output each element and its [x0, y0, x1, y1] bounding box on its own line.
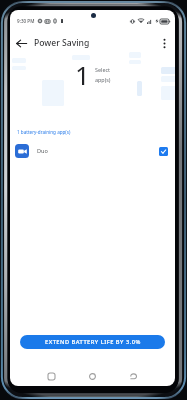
button[interactable]: Recent apps: [44, 369, 58, 383]
staticText: Duo: [37, 147, 48, 155]
staticText: Select: [95, 66, 110, 73]
button[interactable]: More options: [153, 32, 175, 54]
staticText: Power Saving: [34, 37, 90, 49]
staticText: 1 battery-draining app(s): [17, 129, 71, 135]
staticText: 9:30 PM: [17, 18, 35, 24]
staticText: EXTEND BATTERY LIFE BY 3.0%: [45, 338, 141, 346]
button[interactable]: Back: [10, 29, 33, 57]
button[interactable]: Back: [126, 369, 140, 383]
staticText: app(s): [95, 76, 111, 83]
button[interactable]: Duo: [10, 141, 175, 161]
staticText: 1: [75, 57, 90, 92]
button[interactable]: Home: [85, 369, 99, 383]
button[interactable]: EXTEND BATTERY LIFE BY 3.0%: [20, 335, 165, 349]
